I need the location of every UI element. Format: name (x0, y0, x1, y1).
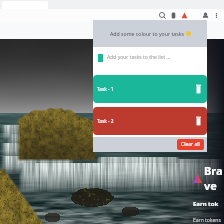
button[interactable]: Extension (180, 11, 189, 20)
button[interactable]: Add your tasks to the list ... (94, 49, 206, 66)
button[interactable]: Delete task (196, 84, 201, 94)
button[interactable]: Brave Shields (169, 11, 178, 20)
button[interactable]: Delete task (196, 116, 201, 126)
staticText: Task - 2 (97, 118, 114, 125)
staticText: Task - 1 (97, 86, 114, 93)
button[interactable]: Search (158, 11, 167, 20)
button[interactable]: Add some colour to your tasks (93, 20, 207, 47)
button[interactable]: Task - 2 (93, 107, 207, 135)
staticText: Earn tok (193, 200, 219, 208)
button[interactable]: Clear all (177, 139, 204, 150)
staticText: Add some colour to your tasks (110, 30, 184, 37)
button[interactable]: Profile (201, 11, 210, 20)
staticText: Earn tokens (193, 217, 221, 224)
staticText: Add your tasks to the list ... (107, 54, 171, 61)
staticText: Clear all (181, 141, 200, 148)
button[interactable]: Task - 1 (93, 75, 207, 103)
staticText: Brave (204, 163, 224, 193)
button[interactable]: More (212, 11, 221, 20)
